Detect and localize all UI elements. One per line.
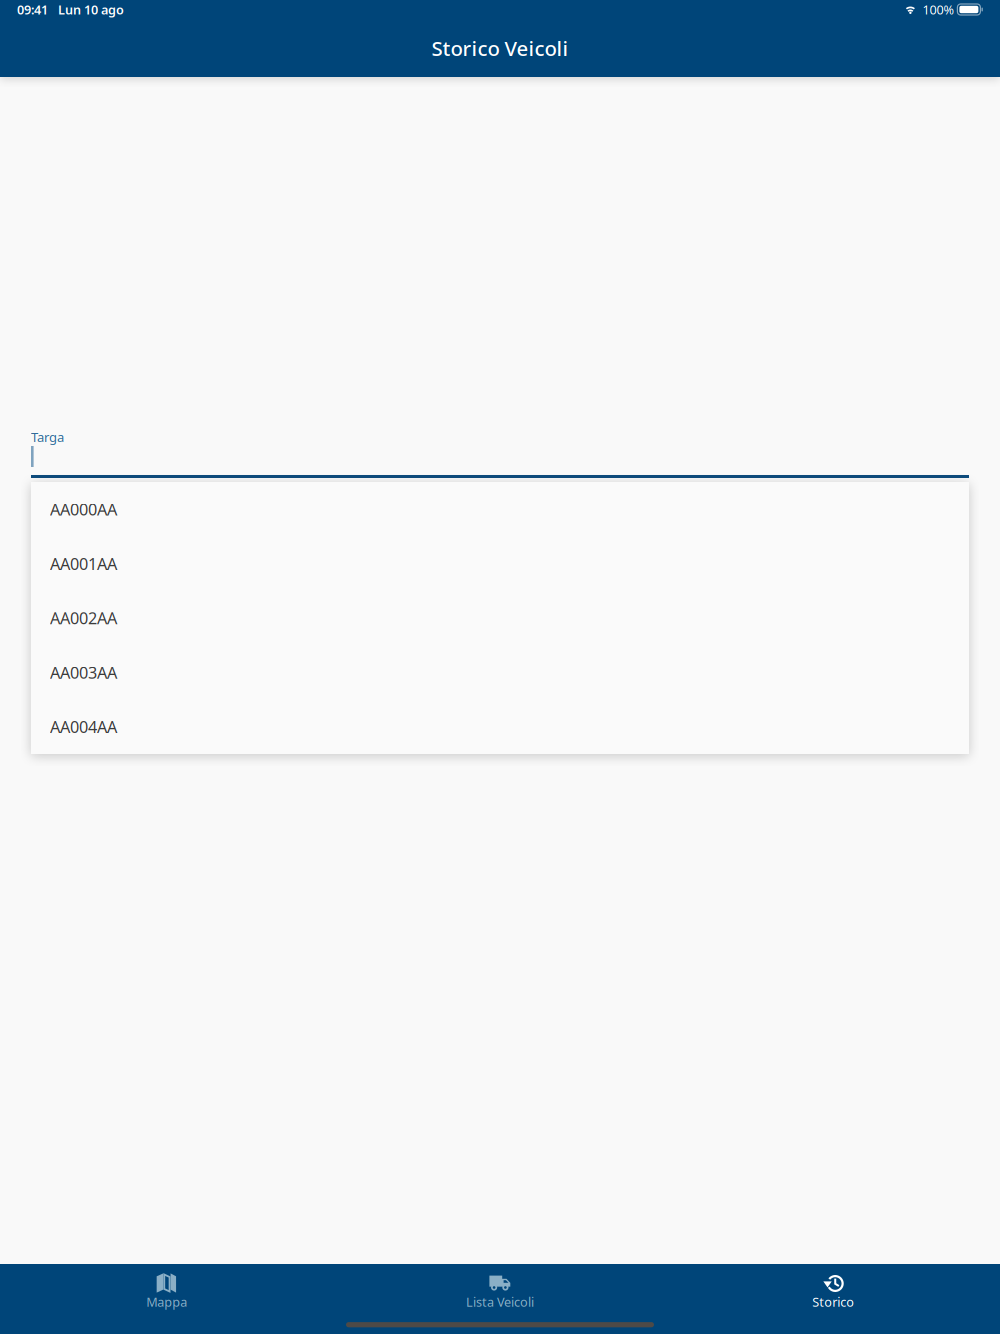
staticText: AA002AA	[50, 607, 117, 629]
staticText: AA003AA	[50, 661, 117, 683]
button[interactable]: Targa	[31, 431, 969, 478]
staticText: 100%	[922, 1, 954, 18]
staticText: AA001AA	[50, 552, 117, 575]
staticText: AA000AA	[50, 498, 117, 520]
staticText: AA004AA	[50, 716, 117, 738]
button[interactable]: AA000AA	[31, 482, 969, 536]
staticText: Storico Veicoli	[431, 34, 568, 62]
button[interactable]: Mappa	[0, 1257, 333, 1319]
button[interactable]: AA003AA	[31, 645, 969, 700]
button[interactable]: AA002AA	[31, 591, 969, 645]
staticText: Mappa	[146, 1293, 187, 1310]
button[interactable]: Storico	[667, 1257, 1000, 1319]
staticText: Targa	[31, 428, 64, 446]
button[interactable]: Lista Veicoli	[333, 1257, 667, 1319]
staticText: 09:41	[17, 1, 48, 18]
button[interactable]: AA001AA	[31, 536, 969, 591]
staticText: Storico	[812, 1293, 854, 1310]
staticText: Lista Veicoli	[466, 1293, 534, 1310]
button[interactable]: AA004AA	[31, 700, 969, 754]
staticText: Lun 10 ago	[58, 1, 124, 18]
